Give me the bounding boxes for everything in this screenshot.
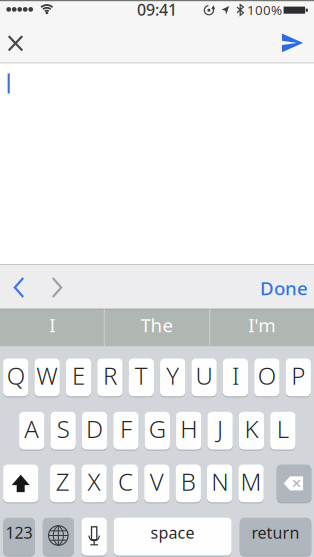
button[interactable]: E xyxy=(66,358,91,396)
staticText: C xyxy=(118,465,133,497)
button[interactable]: Dictate xyxy=(81,518,107,555)
button[interactable]: D xyxy=(82,412,107,450)
staticText: O xyxy=(258,359,276,391)
staticText: L xyxy=(277,413,289,445)
button[interactable]: Shift xyxy=(3,464,38,502)
staticText: K xyxy=(244,413,258,445)
button[interactable]: P xyxy=(286,358,311,396)
staticText: B xyxy=(181,465,196,497)
staticText: A xyxy=(24,413,39,445)
button[interactable]: Close xyxy=(0,26,32,60)
staticText: P xyxy=(291,359,305,391)
staticText: E xyxy=(72,359,85,391)
staticText: Q xyxy=(7,359,25,391)
button[interactable]: I xyxy=(0,309,104,346)
button[interactable]: V xyxy=(144,464,169,502)
staticText: R xyxy=(103,359,117,391)
button[interactable]: Done xyxy=(256,271,312,305)
button[interactable]: G xyxy=(145,412,170,450)
staticText: Y xyxy=(166,359,179,391)
staticText: X xyxy=(88,465,101,497)
staticText: S xyxy=(57,413,70,445)
staticText: I xyxy=(232,359,239,391)
button[interactable]: Z xyxy=(50,464,75,502)
staticText: 09:41 xyxy=(137,0,177,20)
button[interactable]: return xyxy=(240,518,311,555)
staticText: space xyxy=(151,522,195,543)
staticText: The xyxy=(140,313,173,337)
staticText: M xyxy=(240,465,261,497)
staticText: I'm xyxy=(248,313,275,337)
staticText: W xyxy=(36,359,58,391)
button[interactable]: Previous field xyxy=(4,270,34,304)
button[interactable]: C xyxy=(113,464,138,502)
staticText: U xyxy=(196,359,213,391)
staticText: F xyxy=(120,413,132,445)
staticText: G xyxy=(149,413,166,445)
button[interactable]: W xyxy=(34,358,60,396)
button[interactable]: J xyxy=(207,412,233,450)
staticText: N xyxy=(211,465,228,497)
button[interactable]: A xyxy=(19,412,44,450)
staticText: return xyxy=(251,522,299,543)
staticText: V xyxy=(150,465,164,497)
button[interactable]: Delete xyxy=(277,464,311,502)
button[interactable]: F xyxy=(113,412,139,450)
staticText: 123 xyxy=(6,522,33,543)
button[interactable]: U xyxy=(191,358,217,396)
button[interactable]: L xyxy=(270,412,295,450)
button[interactable]: X xyxy=(81,464,107,502)
button[interactable]: Y xyxy=(160,358,185,396)
staticText: Done xyxy=(260,276,308,300)
staticText: 100% xyxy=(247,1,282,19)
staticText: Z xyxy=(56,465,70,497)
staticText: J xyxy=(217,413,223,445)
button[interactable]: Send xyxy=(275,26,309,60)
button[interactable]: N xyxy=(207,464,232,502)
button[interactable]: I'm xyxy=(210,309,314,346)
staticText: H xyxy=(180,413,197,445)
button[interactable]: S xyxy=(50,412,76,450)
button[interactable]: T xyxy=(129,358,154,396)
button[interactable]: R xyxy=(97,358,123,396)
staticText: D xyxy=(86,413,103,445)
button[interactable]: space xyxy=(114,518,232,555)
staticText: T xyxy=(135,359,148,391)
button[interactable]: K xyxy=(239,412,264,450)
button[interactable]: O xyxy=(254,358,279,396)
staticText: I xyxy=(49,313,55,337)
button[interactable]: B xyxy=(176,464,201,502)
button[interactable]: Next field xyxy=(42,270,72,304)
button[interactable]: 123 xyxy=(3,518,35,555)
button[interactable]: The xyxy=(104,309,210,346)
button[interactable]: I xyxy=(223,358,248,396)
button[interactable]: Q xyxy=(3,358,28,396)
button[interactable]: H xyxy=(176,412,201,450)
button[interactable]: Next keyboard xyxy=(43,518,74,555)
button[interactable]: M xyxy=(238,464,264,502)
